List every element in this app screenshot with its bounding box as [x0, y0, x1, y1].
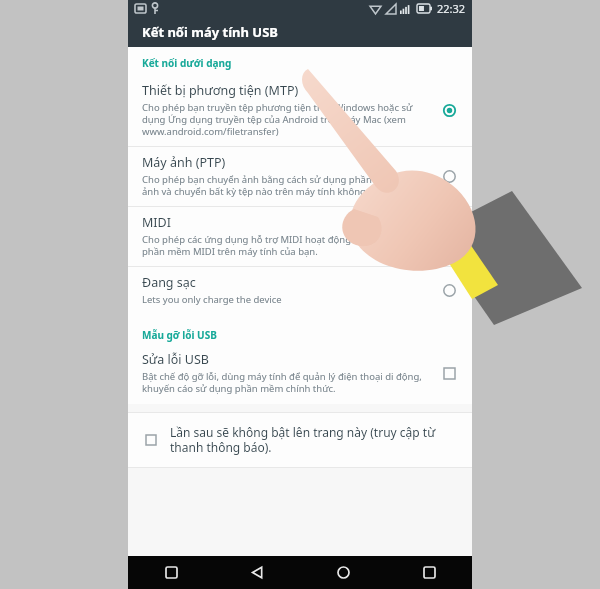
staticText: Lets you only charge the device	[142, 293, 282, 306]
staticText: Cho phép bạn truyền tệp phương tiện trên…	[142, 101, 428, 138]
button[interactable]: Do not show again checkbox	[128, 413, 472, 467]
staticText: MIDI	[142, 214, 171, 231]
button[interactable]: Back	[214, 556, 300, 589]
button[interactable]: Home	[300, 556, 386, 589]
button[interactable]: Recents	[386, 556, 472, 589]
staticText: Máy ảnh (PTP)	[142, 154, 226, 171]
staticText: Bật chế độ gỡ lỗi, dùng máy tính để quản…	[142, 370, 428, 395]
button[interactable]: Menu	[128, 556, 214, 589]
staticText: Cho phép bạn chuyển ảnh bằng cách sử dụn…	[142, 173, 428, 198]
button[interactable]: Máy ảnh (PTP)	[128, 147, 472, 206]
staticText: Mẫu gỡ lỗi USB	[142, 328, 217, 342]
staticText: Kết nối dưới dạng	[142, 56, 232, 70]
button[interactable]: Select option	[436, 277, 462, 303]
staticText: Sửa lỗi USB	[142, 351, 209, 368]
button[interactable]: Do not show again checkbox	[142, 431, 160, 449]
button[interactable]: Selected option	[436, 97, 462, 123]
staticText: Thiết bị phương tiện (MTP)	[142, 82, 299, 99]
button[interactable]: Sửa lỗi USB	[128, 346, 472, 404]
staticText: Lần sau sẽ không bật lên trang này (truy…	[170, 424, 436, 455]
staticText: Đang sạc	[142, 274, 196, 291]
button[interactable]: Select option	[436, 163, 462, 189]
button[interactable]: Kết nối máy tính USB	[128, 17, 472, 47]
staticText: Kết nối máy tính USB	[142, 23, 278, 41]
button[interactable]: MIDI	[128, 207, 472, 266]
button[interactable]: USB debugging checkbox	[436, 360, 462, 386]
button[interactable]: Thiết bị phương tiện (MTP)	[128, 75, 472, 146]
staticText: 22:32	[437, 1, 466, 16]
button[interactable]: Đang sạc	[128, 267, 472, 314]
staticText: Cho phép các ứng dụng hỗ trợ MIDI hoạt đ…	[142, 233, 428, 258]
